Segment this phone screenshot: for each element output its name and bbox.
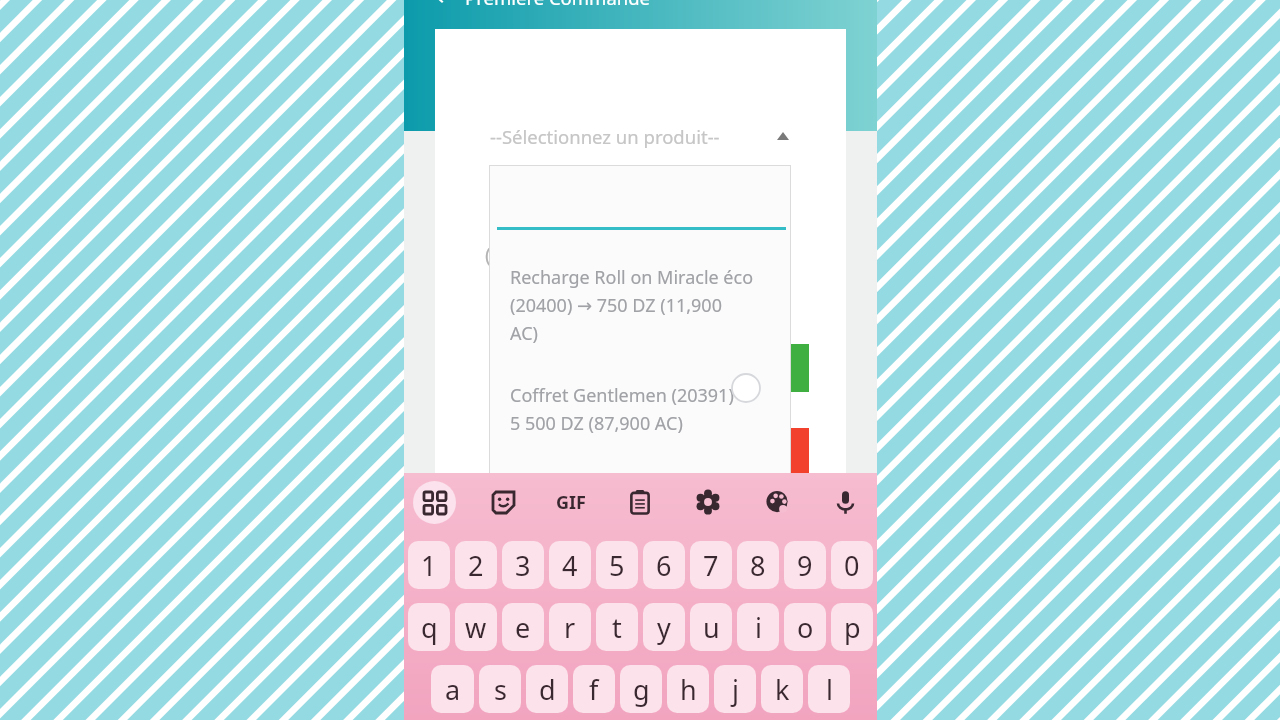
button[interactable]: e bbox=[502, 603, 544, 651]
button[interactable]: 8 bbox=[737, 541, 779, 589]
staticText: u bbox=[703, 609, 720, 646]
staticText: a bbox=[445, 671, 461, 708]
staticText: l bbox=[826, 671, 833, 708]
button[interactable]: y bbox=[643, 603, 685, 651]
button[interactable]: t bbox=[596, 603, 638, 651]
button[interactable]: o bbox=[784, 603, 826, 651]
button[interactable]: i bbox=[737, 603, 779, 651]
staticText: 6 bbox=[656, 547, 672, 584]
staticText: r bbox=[564, 609, 576, 646]
button[interactable]: Validate bbox=[789, 344, 809, 392]
button[interactable]: k bbox=[761, 665, 803, 713]
button[interactable]: l bbox=[808, 665, 850, 713]
button[interactable]: j bbox=[714, 665, 756, 713]
staticText: Recharge Roll on Miracle éco (20400) → 7… bbox=[510, 265, 754, 345]
button[interactable]: Delete bbox=[789, 428, 809, 473]
button[interactable]: Coffret Gentlemen (20391) 5 500 DZ (87,9… bbox=[489, 378, 791, 458]
button[interactable]: w bbox=[455, 603, 497, 651]
staticText: w bbox=[465, 609, 487, 646]
staticText: 5 bbox=[609, 547, 625, 584]
button[interactable]: Theme bbox=[747, 473, 807, 531]
button[interactable]: Voice input bbox=[815, 473, 875, 531]
staticText: q bbox=[421, 609, 438, 646]
staticText: ( bbox=[485, 241, 491, 268]
staticText: j bbox=[732, 671, 739, 708]
staticText: t bbox=[612, 609, 622, 646]
button[interactable]: Settings bbox=[678, 473, 738, 531]
button[interactable]: Apps bbox=[404, 473, 464, 531]
staticText: 0 bbox=[844, 547, 860, 584]
button[interactable]: 2 bbox=[455, 541, 497, 589]
staticText: 1 bbox=[421, 547, 437, 584]
button[interactable]: --Sélectionnez un produit-- bbox=[435, 116, 846, 156]
button[interactable]: Clipboard bbox=[610, 473, 670, 531]
staticText: f bbox=[589, 671, 599, 708]
button[interactable]: a bbox=[431, 665, 474, 713]
staticText: y bbox=[657, 609, 671, 646]
staticText: i bbox=[755, 609, 762, 646]
staticText: g bbox=[633, 671, 650, 708]
button[interactable]: q bbox=[408, 603, 450, 651]
button[interactable]: GIF bbox=[541, 473, 601, 531]
other: Back bbox=[436, 0, 451, 5]
staticText: 9 bbox=[797, 547, 813, 584]
staticText: 3 bbox=[515, 547, 531, 584]
staticText: 8 bbox=[750, 547, 766, 584]
staticText: 7 bbox=[703, 547, 719, 584]
button[interactable]: s bbox=[479, 665, 521, 713]
staticText: GIF bbox=[556, 490, 586, 515]
staticText: s bbox=[494, 671, 507, 708]
staticText: Coffret Gentlemen (20391) 5 500 DZ (87,9… bbox=[510, 383, 734, 435]
button[interactable]: p bbox=[831, 603, 873, 651]
button[interactable]: h bbox=[667, 665, 709, 713]
staticText: Première Commande bbox=[465, 0, 651, 10]
button[interactable]: f bbox=[573, 665, 615, 713]
staticText: p bbox=[844, 609, 861, 646]
staticText: --Sélectionnez un produit-- bbox=[490, 124, 720, 149]
button[interactable]: g bbox=[620, 665, 662, 713]
staticText: o bbox=[797, 609, 814, 646]
staticText: e bbox=[515, 609, 531, 646]
staticText: k bbox=[775, 671, 790, 708]
button[interactable]: 0 bbox=[831, 541, 873, 589]
button[interactable]: 5 bbox=[596, 541, 638, 589]
button[interactable]: r bbox=[549, 603, 591, 651]
button[interactable]: u bbox=[690, 603, 732, 651]
button[interactable]: 6 bbox=[643, 541, 685, 589]
button[interactable]: Recharge Roll on Miracle éco (20400) → 7… bbox=[489, 260, 791, 360]
button[interactable]: 4 bbox=[549, 541, 591, 589]
button[interactable]: Stickers bbox=[473, 473, 533, 531]
staticText: h bbox=[680, 671, 697, 708]
button[interactable]: 1 bbox=[408, 541, 450, 589]
other: Collapse bbox=[777, 132, 789, 140]
button[interactable]: 7 bbox=[690, 541, 732, 589]
button[interactable]: d bbox=[526, 665, 568, 713]
staticText: d bbox=[539, 671, 556, 708]
staticText: 2 bbox=[468, 547, 484, 584]
button[interactable]: 3 bbox=[502, 541, 544, 589]
staticText: 4 bbox=[562, 547, 578, 584]
button[interactable]: Back bbox=[436, 0, 651, 11]
button[interactable]: 9 bbox=[784, 541, 826, 589]
